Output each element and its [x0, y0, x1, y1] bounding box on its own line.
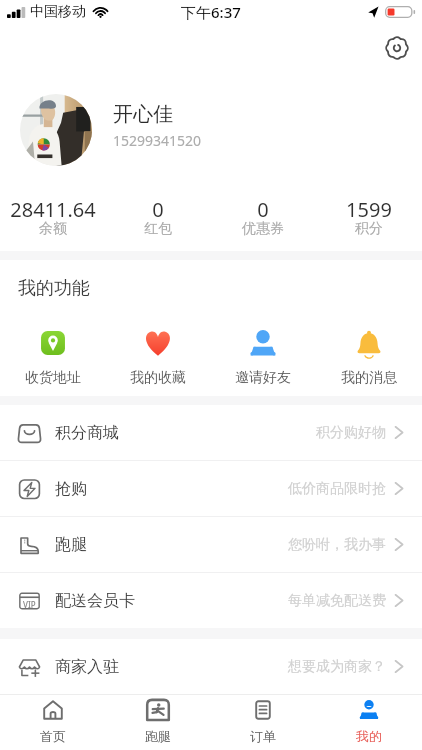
staticText: 余额	[39, 220, 67, 238]
button[interactable]: 0	[105, 176, 210, 251]
staticText: 积分购好物	[316, 424, 386, 442]
staticText: 1599	[346, 196, 392, 223]
button[interactable]: 商家入驻	[0, 639, 422, 694]
staticText: 配送会员卡	[55, 591, 135, 611]
staticText: 我的收藏	[130, 369, 186, 387]
button[interactable]: 积分商城	[0, 405, 422, 460]
staticText: 跑腿	[145, 728, 171, 744]
button[interactable]: 首页	[0, 695, 105, 750]
staticText: 商家入驻	[55, 657, 119, 677]
button[interactable]: 抢购	[0, 461, 422, 516]
staticText: 15299341520	[113, 131, 202, 150]
staticText: 跑腿	[55, 535, 87, 555]
button[interactable]: 我的	[316, 695, 422, 750]
staticText: 您吩咐，我办事	[288, 536, 386, 554]
staticText: 优惠券	[242, 220, 284, 238]
staticText: 0	[152, 196, 164, 223]
button[interactable]: Settings	[385, 36, 409, 60]
button[interactable]: 我的消息	[316, 316, 422, 396]
staticText: 我的消息	[341, 369, 397, 387]
button[interactable]: VIP	[0, 573, 422, 628]
staticText: 低价商品限时抢	[288, 480, 386, 498]
button[interactable]: 开心佳	[0, 84, 422, 176]
staticText: 红包	[144, 220, 172, 238]
button[interactable]: 跑腿	[105, 695, 210, 750]
staticText: 首页	[40, 728, 66, 744]
staticText: 收货地址	[25, 369, 81, 387]
button[interactable]: 1599	[316, 176, 422, 251]
staticText: 下午6:37	[181, 2, 241, 22]
staticText: 0	[257, 196, 269, 223]
staticText: 28411.64	[10, 196, 96, 223]
button[interactable]: 跑腿	[0, 517, 422, 572]
staticText: 积分商城	[55, 423, 119, 443]
button[interactable]: 邀请好友	[210, 316, 316, 396]
button[interactable]: 我的收藏	[105, 316, 210, 396]
staticText: 每单减免配送费	[288, 592, 386, 610]
button[interactable]: 收货地址	[0, 316, 105, 396]
button[interactable]: 28411.64	[0, 176, 105, 251]
staticText: 中国移动	[30, 3, 86, 21]
button[interactable]: 0	[210, 176, 316, 251]
staticText: VIP	[23, 599, 36, 610]
staticText: 想要成为商家？	[288, 658, 386, 676]
staticText: 开心佳	[113, 102, 173, 127]
staticText: 邀请好友	[235, 369, 291, 387]
staticText: 我的	[356, 728, 382, 744]
button[interactable]: 订单	[210, 695, 316, 750]
staticText: 订单	[250, 728, 276, 744]
staticText: 积分	[355, 220, 383, 238]
staticText: 抢购	[55, 479, 87, 499]
staticText: 我的功能	[18, 277, 90, 300]
